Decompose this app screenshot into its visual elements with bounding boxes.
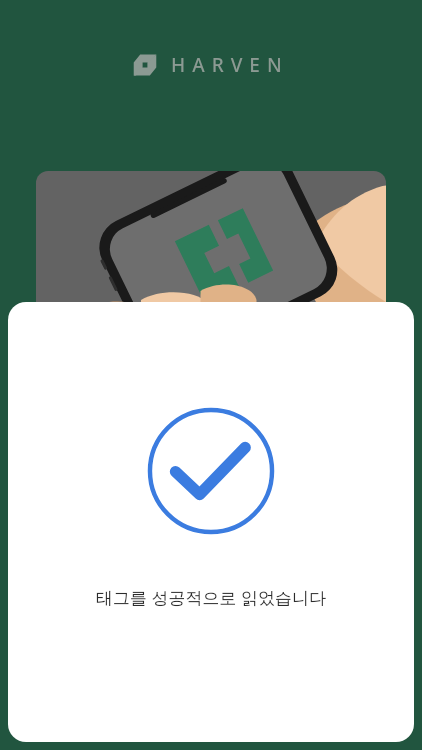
other: Harven logo	[133, 53, 157, 77]
button[interactable]: Harven logo	[129, 52, 293, 78]
staticText: HARVEN	[171, 52, 289, 78]
other: Success	[144, 404, 278, 538]
staticText: 태그를 성공적으로 읽었습니다	[96, 586, 326, 609]
button[interactable]	[36, 171, 386, 321]
